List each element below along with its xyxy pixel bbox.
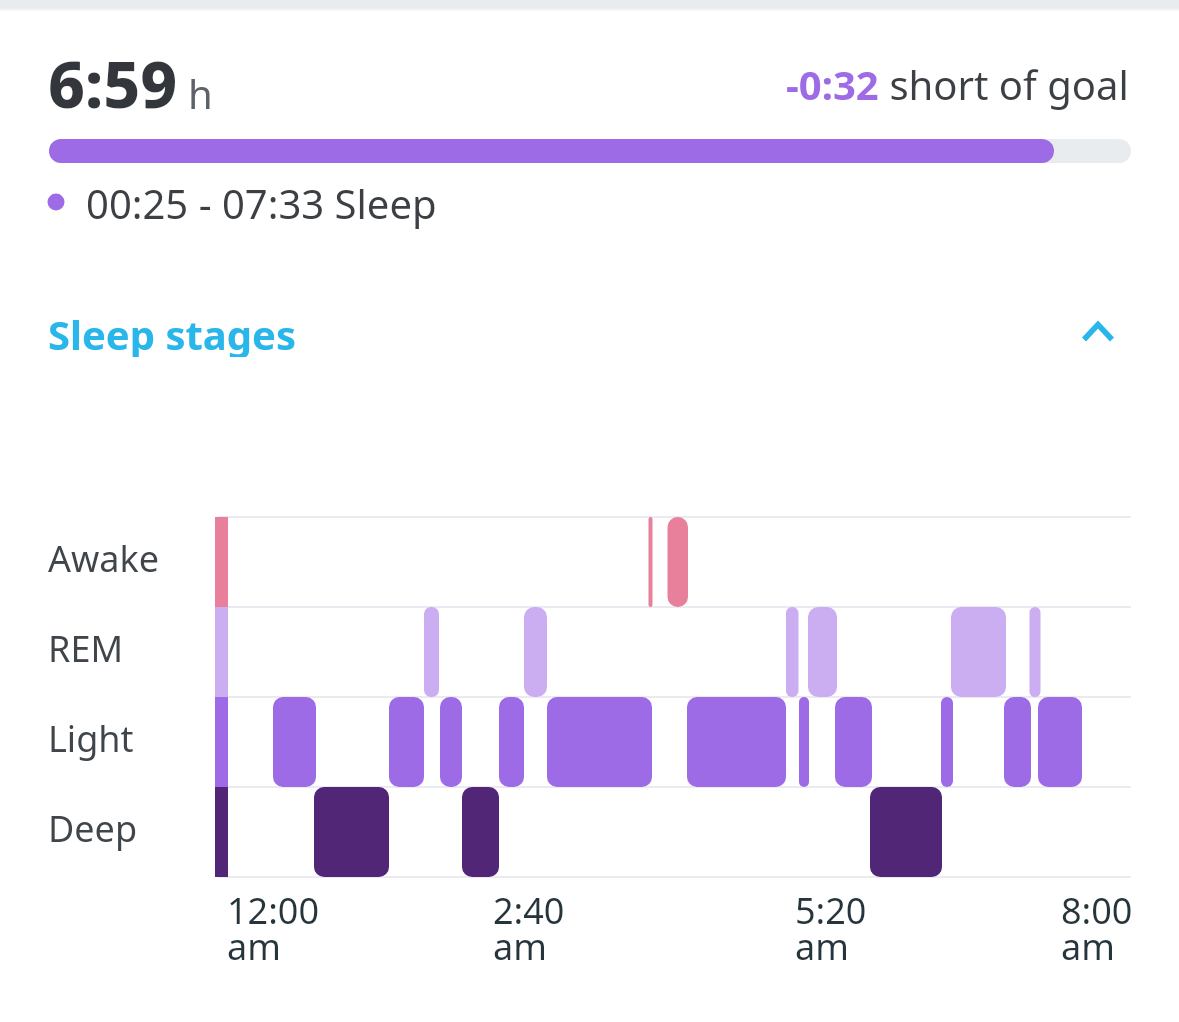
staticText: 12:00 am — [227, 886, 320, 971]
staticText: 6:59 — [48, 40, 178, 127]
staticText: 2:40 am — [493, 886, 565, 971]
staticText: REM — [48, 624, 124, 673]
staticText: 00:25 - 07:33 Sleep — [86, 176, 437, 230]
staticText: h — [188, 66, 213, 120]
button[interactable] — [1076, 318, 1120, 348]
staticText: short of goal — [879, 57, 1129, 111]
staticText: Awake — [48, 534, 160, 583]
staticText: Sleep stages — [48, 307, 297, 357]
staticText: Light — [48, 714, 134, 763]
button[interactable]: 00:25 - 07:33 Sleep — [86, 176, 437, 230]
button[interactable]: Sleep stages — [0, 307, 1179, 357]
staticText: 8:00 am — [1061, 886, 1133, 971]
staticText: Deep — [48, 804, 138, 853]
staticText: -0:32 — [786, 57, 879, 111]
staticText: 5:20 am — [795, 886, 867, 971]
